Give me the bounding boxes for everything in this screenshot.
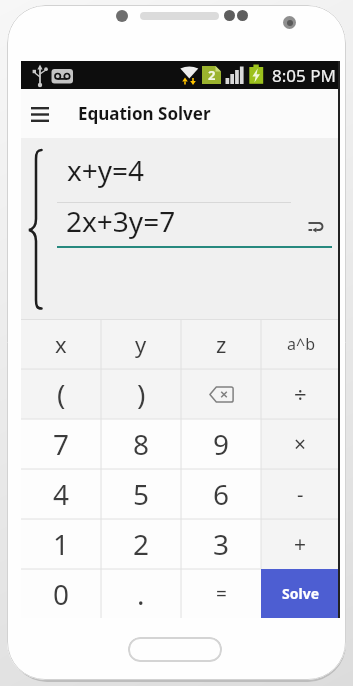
button[interactable]: 4 (21, 469, 101, 519)
staticText: - (297, 481, 304, 508)
staticText: ( (57, 375, 66, 413)
button[interactable] (128, 637, 222, 662)
staticText: ÷ (294, 379, 307, 409)
staticText: 2 (208, 66, 216, 84)
staticText: 3 (213, 525, 230, 563)
staticText: 8 (133, 425, 150, 463)
staticText: + (294, 530, 307, 559)
button[interactable]: 6 (181, 469, 261, 519)
staticText: Solve (282, 584, 319, 603)
button[interactable]: 1 (21, 519, 101, 569)
staticText: x (55, 329, 67, 359)
staticText: y (135, 329, 147, 359)
staticText: 9 (213, 425, 230, 463)
staticText: 5 (133, 475, 150, 513)
button[interactable]: 8 (101, 419, 181, 469)
staticText: = (216, 581, 227, 607)
button[interactable]: x (21, 319, 101, 369)
button[interactable]: a^b (261, 319, 340, 369)
staticText: 0 (53, 575, 70, 613)
staticText: x+y=4 (67, 151, 145, 189)
button[interactable]: ) (101, 369, 181, 419)
button[interactable]: 2 (101, 519, 181, 569)
button[interactable]: 7 (21, 419, 101, 469)
button[interactable]: 5 (101, 469, 181, 519)
staticText: . (137, 575, 145, 613)
staticText: 7 (53, 425, 70, 463)
button[interactable] (303, 215, 331, 239)
button[interactable]: 3 (181, 519, 261, 569)
staticText: z (216, 329, 227, 359)
staticText: 2 (133, 525, 150, 563)
staticText: 8:05 PM (272, 64, 336, 87)
button[interactable]: 0 (21, 569, 101, 618)
staticText: 6 (213, 475, 230, 513)
staticText: 2x+3y=7 (66, 202, 176, 240)
staticText: × (294, 430, 307, 459)
button[interactable] (181, 369, 261, 419)
button[interactable]: - (261, 469, 340, 519)
button[interactable]: y (101, 319, 181, 369)
button[interactable]: 9 (181, 419, 261, 469)
staticText: 1 (53, 525, 70, 563)
button[interactable] (23, 94, 57, 134)
button[interactable]: z (181, 319, 261, 369)
staticText: Equation Solver (78, 102, 211, 125)
button[interactable]: Solve (261, 569, 340, 618)
button[interactable]: ( (21, 369, 101, 419)
button[interactable]: ÷ (261, 369, 340, 419)
button[interactable]: . (101, 569, 181, 618)
button[interactable]: = (181, 569, 261, 618)
staticText: a^b (287, 333, 315, 355)
button[interactable]: + (261, 519, 340, 569)
staticText: 4 (53, 475, 70, 513)
button[interactable]: × (261, 419, 340, 469)
staticText: ) (137, 375, 146, 413)
